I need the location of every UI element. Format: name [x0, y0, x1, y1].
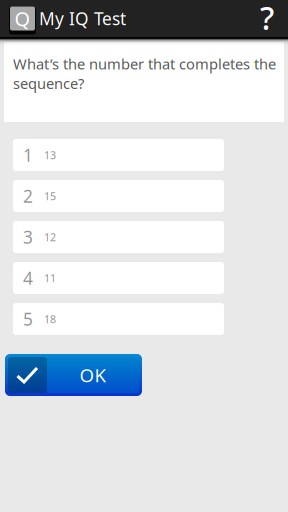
button[interactable]: 1 — [13, 139, 224, 171]
staticText: 5 — [23, 307, 33, 330]
staticText: 15 — [44, 189, 56, 203]
staticText: 18 — [44, 312, 56, 326]
staticText: 11 — [44, 271, 56, 285]
staticText: 13 — [44, 148, 56, 162]
staticText: ? — [260, 0, 274, 39]
staticText: My IQ Test — [39, 7, 126, 30]
staticText: 2 — [23, 184, 33, 207]
button[interactable]: 4 — [13, 262, 224, 294]
button[interactable]: Help — [246, 0, 288, 37]
staticText: 4 — [23, 266, 33, 289]
staticText: 3 — [23, 225, 33, 248]
button[interactable]: Q — [0, 0, 126, 37]
staticText: Q — [14, 5, 30, 32]
staticText: OK — [79, 363, 106, 387]
staticText: 12 — [44, 230, 56, 244]
button[interactable]: 3 — [13, 221, 224, 253]
button[interactable]: 2 — [13, 180, 224, 212]
button[interactable]: OK — [5, 354, 142, 396]
button[interactable]: 5 — [13, 303, 224, 335]
staticText: What’s the number that completes the seq… — [13, 54, 276, 93]
staticText: 1 — [23, 143, 33, 166]
